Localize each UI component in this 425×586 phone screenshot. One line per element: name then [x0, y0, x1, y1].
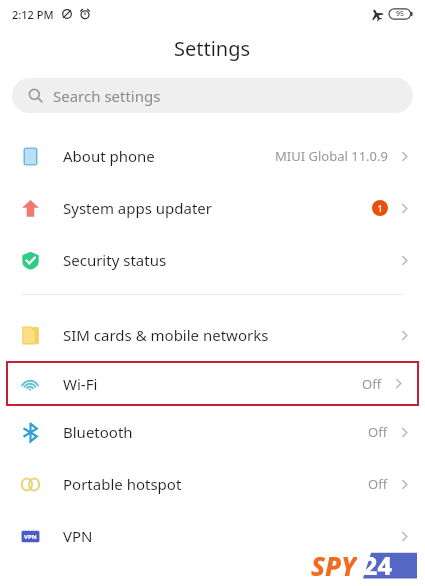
staticText: MIUI Global 11.0.9 — [275, 147, 388, 165]
button[interactable]: Portable hotspot — [0, 458, 425, 510]
staticText: 24 — [363, 548, 392, 582]
staticText: 1 — [377, 202, 383, 214]
staticText: Off — [368, 423, 388, 441]
staticText: VPN — [63, 526, 93, 546]
staticText: VPN — [24, 533, 37, 541]
button[interactable]: Bluetooth — [0, 406, 425, 458]
staticText: Bluetooth — [63, 422, 133, 442]
button[interactable]: VPN — [0, 510, 425, 562]
button[interactable]: About phone — [0, 130, 425, 182]
staticText: 2:12 PM — [12, 7, 54, 22]
button[interactable]: System apps updater — [0, 182, 425, 234]
button[interactable]: Search settings — [12, 78, 413, 113]
staticText: Portable hotspot — [63, 474, 182, 494]
staticText: Settings — [174, 35, 251, 62]
button[interactable]: SIM cards & mobile networks — [0, 309, 425, 361]
staticText: SPY — [311, 548, 357, 582]
staticText: System apps updater — [63, 198, 213, 218]
staticText: SIM cards & mobile networks — [63, 325, 269, 345]
staticText: 95 — [396, 9, 405, 19]
staticText: Search settings — [53, 86, 161, 106]
staticText: Wi-Fi — [63, 374, 98, 394]
staticText: Security status — [63, 250, 167, 270]
button[interactable]: Security status — [0, 234, 425, 286]
staticText: About phone — [63, 146, 155, 166]
staticText: Off — [368, 475, 388, 493]
staticText: Off — [362, 375, 382, 393]
